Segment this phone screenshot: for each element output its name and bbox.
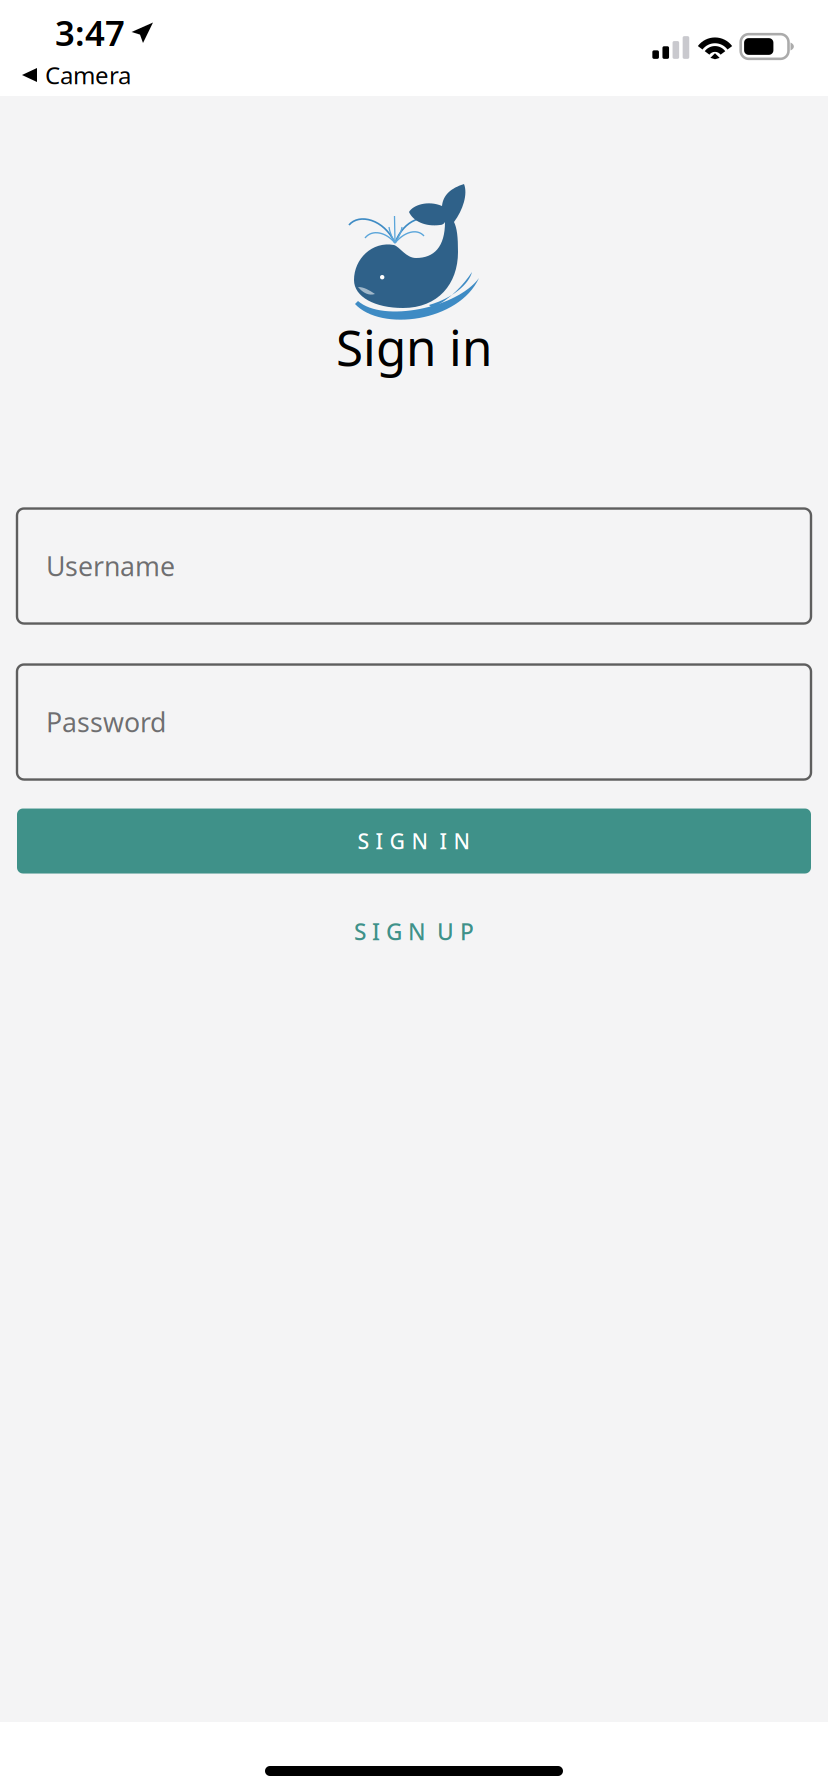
staticText: Camera bbox=[45, 59, 131, 91]
staticText: Password bbox=[46, 704, 166, 740]
staticText: Username bbox=[46, 548, 175, 584]
button[interactable]: Camera bbox=[0, 58, 147, 100]
button[interactable]: S I G N bbox=[17, 808, 811, 873]
staticText: I N bbox=[439, 827, 470, 855]
staticText: U P bbox=[437, 916, 474, 947]
staticText: 3:47 bbox=[55, 9, 125, 55]
staticText: Sign in bbox=[336, 314, 492, 379]
button[interactable]: S I G N bbox=[17, 901, 811, 961]
staticText: S I G N bbox=[354, 916, 426, 947]
staticText: S I G N bbox=[357, 827, 428, 855]
